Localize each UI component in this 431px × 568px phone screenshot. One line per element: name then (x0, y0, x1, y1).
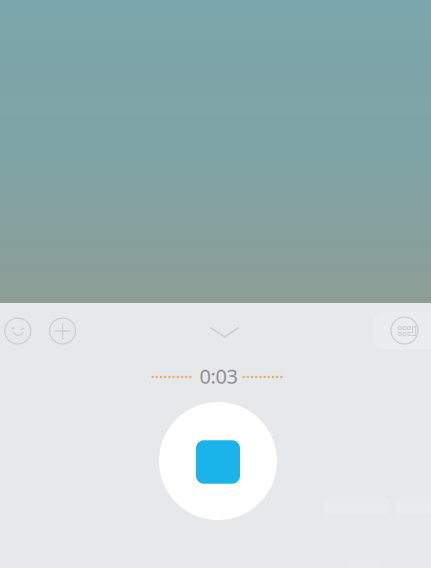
button[interactable]: More (40, 309, 84, 353)
button[interactable]: Stickers (0, 309, 40, 353)
staticText: 0:03 (199, 363, 237, 389)
button[interactable]: Stop recording (159, 402, 277, 520)
button[interactable]: Collapse (192, 310, 256, 354)
button[interactable]: Keyboard (374, 312, 431, 349)
